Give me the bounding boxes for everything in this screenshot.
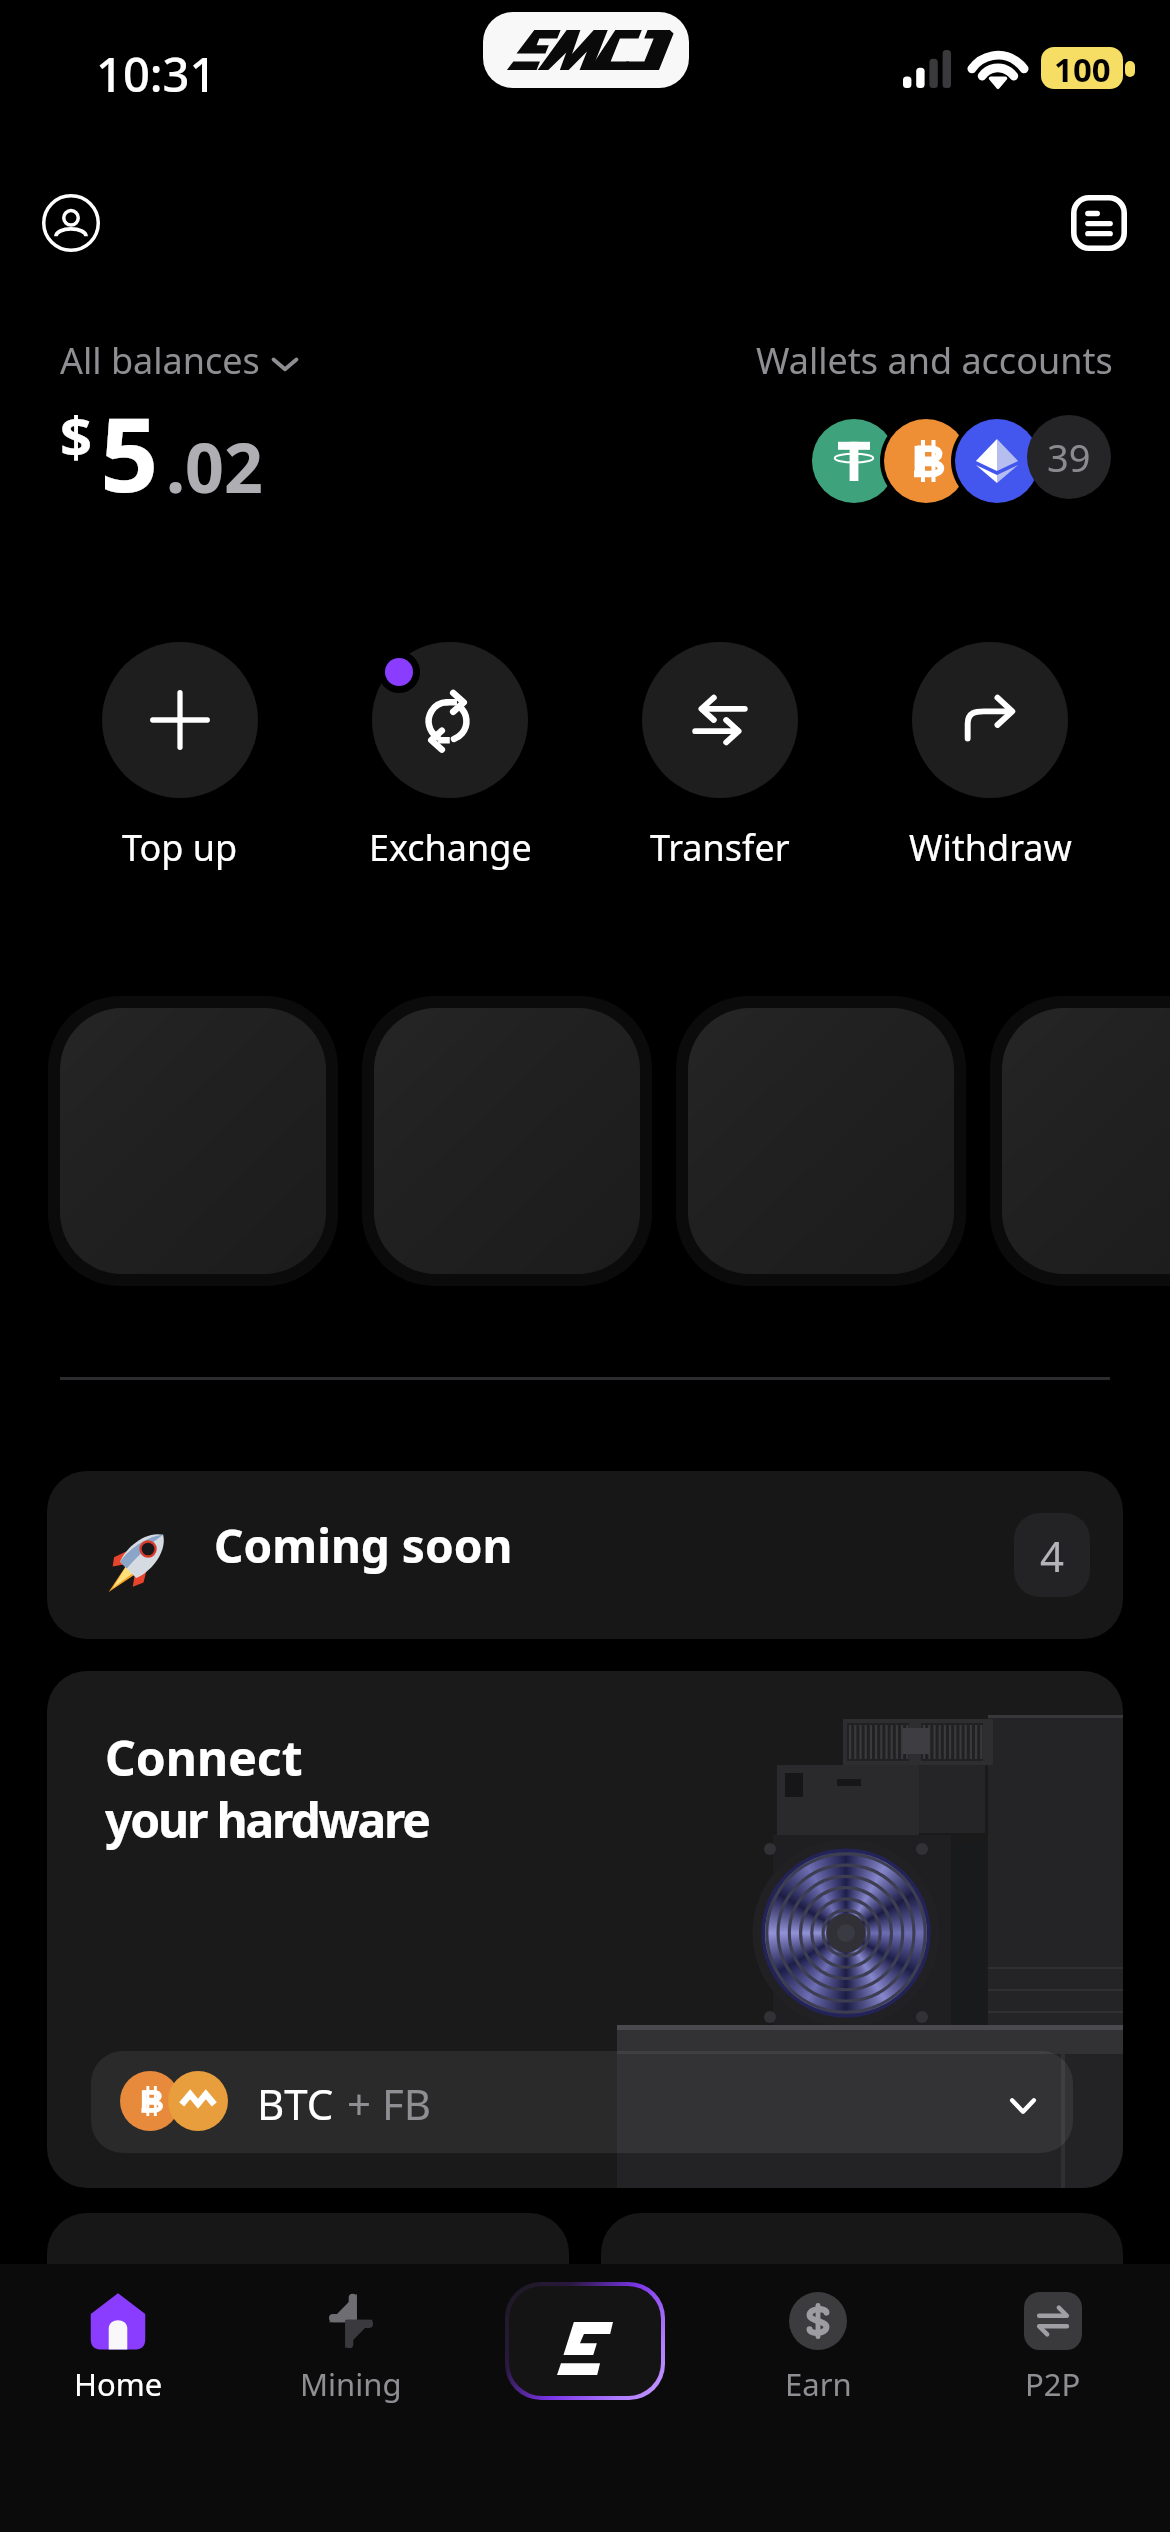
staticText: 4 — [1040, 1527, 1065, 1584]
staticText: All balances — [60, 336, 260, 385]
button[interactable]: BTC — [91, 2051, 1073, 2153]
button[interactable]: Connect — [47, 1671, 1123, 2188]
staticText: Earn — [785, 2363, 852, 2405]
staticText: + FB — [347, 2075, 432, 2132]
button[interactable]: Profile — [38, 190, 104, 256]
button[interactable]: Coming soon — [47, 1471, 1123, 1639]
button[interactable]: Top up — [45, 642, 315, 872]
button[interactable]: P2P — [943, 2282, 1163, 2405]
staticText: Top up — [122, 823, 238, 872]
staticText: Mining — [300, 2363, 402, 2405]
button[interactable] — [1002, 1008, 1170, 1274]
staticText: your hardware — [105, 1787, 429, 1852]
staticText: BTC — [257, 2075, 334, 2132]
staticText: Exchange — [369, 823, 532, 872]
button[interactable]: Withdraw — [855, 642, 1125, 872]
button[interactable]: Earn — [708, 2282, 928, 2405]
button[interactable]: EMCD — [509, 2286, 661, 2396]
staticText: $ — [60, 397, 93, 473]
staticText: Home — [74, 2363, 163, 2405]
button[interactable]: All balances — [60, 336, 298, 385]
button[interactable]: Transfer — [585, 642, 855, 872]
staticText: Withdraw — [909, 823, 1072, 872]
staticText: 39 — [1047, 431, 1091, 483]
button[interactable] — [47, 2213, 569, 2333]
button[interactable]: Wallets and accounts — [756, 336, 1113, 385]
staticText: P2P — [1025, 2363, 1081, 2405]
staticText: Coming soon — [214, 1514, 513, 1577]
staticText: 5 — [100, 383, 159, 522]
staticText: Connect — [105, 1725, 303, 1790]
staticText: Transfer — [650, 823, 790, 872]
button[interactable] — [60, 1008, 326, 1274]
button[interactable]: Home — [8, 2282, 228, 2405]
staticText: 10:31 — [96, 42, 217, 106]
button[interactable]: 39 — [808, 415, 1168, 507]
button[interactable]: Mining — [241, 2282, 461, 2405]
staticText: .02 — [166, 420, 263, 513]
button[interactable] — [601, 2213, 1123, 2333]
button[interactable] — [374, 1008, 640, 1274]
staticText: 100 — [1054, 47, 1111, 89]
button[interactable]: Exchange — [315, 642, 585, 872]
button[interactable] — [688, 1008, 954, 1274]
button[interactable]: Transaction history — [1068, 192, 1130, 254]
